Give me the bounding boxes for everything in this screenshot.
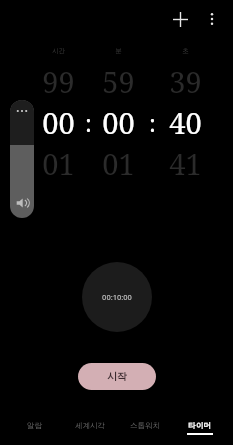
button[interactable]: 시작: [78, 363, 156, 390]
button[interactable]: 99: [32, 62, 84, 182]
staticText: 00: [102, 103, 135, 142]
button[interactable]: 세계시각: [62, 421, 117, 435]
staticText: 시간: [52, 47, 65, 55]
button[interactable]: 알람: [6, 421, 62, 435]
button[interactable]: More options: [197, 4, 227, 34]
staticText: 99: [42, 62, 75, 100]
button[interactable]: 타이머: [172, 421, 227, 435]
staticText: 41: [169, 144, 202, 182]
staticText: 알람: [27, 421, 42, 430]
staticText: 00: [42, 103, 75, 142]
staticText: 분: [115, 47, 122, 55]
staticText: 세계시각: [75, 421, 105, 430]
staticText: :: [85, 106, 92, 139]
staticText: 39: [169, 62, 202, 100]
button[interactable]: 00:10:00: [82, 262, 152, 332]
staticText: 타이머: [188, 421, 211, 430]
staticText: 00:10:00: [102, 292, 132, 302]
staticText: 40: [169, 103, 202, 142]
button[interactable]: Volume: [10, 100, 34, 218]
staticText: 초: [182, 47, 189, 55]
staticText: 스톱워치: [130, 421, 160, 430]
staticText: 01: [102, 144, 135, 182]
button[interactable]: 59: [92, 62, 144, 182]
button[interactable]: 39: [159, 62, 211, 182]
button[interactable]: Add timer: [163, 2, 197, 36]
staticText: 59: [102, 62, 135, 100]
staticText: :: [149, 106, 156, 139]
button[interactable]: 스톱워치: [117, 421, 172, 435]
staticText: 01: [42, 144, 75, 182]
staticText: 시작: [107, 370, 127, 383]
